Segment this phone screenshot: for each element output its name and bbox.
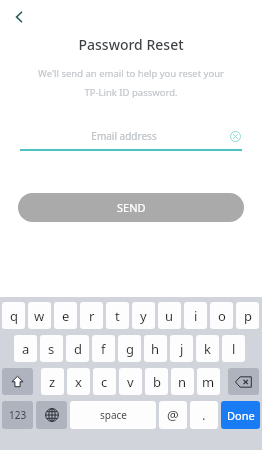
staticText: i [194,307,198,325]
staticText: q [10,307,18,325]
button[interactable]: p [236,302,259,329]
button[interactable]: space [70,401,156,429]
staticText: n [178,373,187,391]
button[interactable]: Email address [20,127,242,145]
staticText: 123 [9,408,27,422]
button[interactable]: k [196,335,219,362]
staticText: c [101,373,108,391]
staticText: s [48,340,55,358]
button[interactable]: c [93,368,116,395]
button[interactable]: Back [4,2,34,32]
button[interactable]: b [145,368,168,395]
button[interactable]: a [14,335,37,362]
staticText: h [151,340,160,358]
staticText: o [218,307,226,325]
staticText: f [101,340,106,358]
button[interactable]: Done [221,401,260,429]
staticText: u [165,307,174,325]
button[interactable]: t [106,302,129,329]
staticText: space [100,408,127,422]
button[interactable]: Shift [2,368,33,395]
button[interactable]: s [40,335,63,362]
staticText: m [202,373,215,391]
button[interactable]: m [197,368,220,395]
button[interactable]: x [67,368,90,395]
staticText: y [140,307,147,325]
staticText: d [74,340,82,358]
staticText: SEND [117,200,146,215]
button[interactable]: f [92,335,115,362]
staticText: j [180,340,184,358]
button[interactable]: . [190,401,218,429]
button[interactable]: 123 [2,401,33,429]
button[interactable]: n [171,368,194,395]
staticText: @ [167,406,179,424]
staticText: g [126,340,134,358]
button[interactable]: v [119,368,142,395]
button[interactable]: r [80,302,103,329]
staticText: r [89,307,95,325]
staticText: Password Reset [0,35,262,54]
button[interactable]: i [184,302,207,329]
staticText: b [153,373,161,391]
button[interactable]: q [2,302,25,329]
button[interactable]: SEND [18,193,244,222]
staticText: k [204,340,211,358]
staticText: TP-Link ID password. [0,86,262,99]
staticText: . [202,406,206,424]
button[interactable]: Change keyboard language [36,401,67,429]
button[interactable]: Clear text [228,129,242,143]
button[interactable]: j [170,335,193,362]
staticText: v [127,373,134,391]
staticText: l [232,340,236,358]
staticText: w [34,307,45,325]
button[interactable]: y [132,302,155,329]
button[interactable]: l [222,335,245,362]
staticText: x [75,373,82,391]
staticText: a [22,340,30,358]
button[interactable]: o [210,302,233,329]
button[interactable]: Backspace [228,368,259,395]
staticText: t [115,307,120,325]
button[interactable]: z [41,368,64,395]
button[interactable]: g [118,335,141,362]
staticText: p [244,307,252,325]
staticText: z [49,373,56,391]
button[interactable]: u [158,302,181,329]
button[interactable]: h [144,335,167,362]
staticText: Email address [20,129,228,143]
staticText: We'll send an email to help you reset yo… [0,67,262,80]
button[interactable]: w [28,302,51,329]
button[interactable]: e [54,302,77,329]
staticText: e [62,307,70,325]
staticText: Done [227,408,255,423]
button[interactable]: @ [159,401,187,429]
button[interactable]: d [66,335,89,362]
